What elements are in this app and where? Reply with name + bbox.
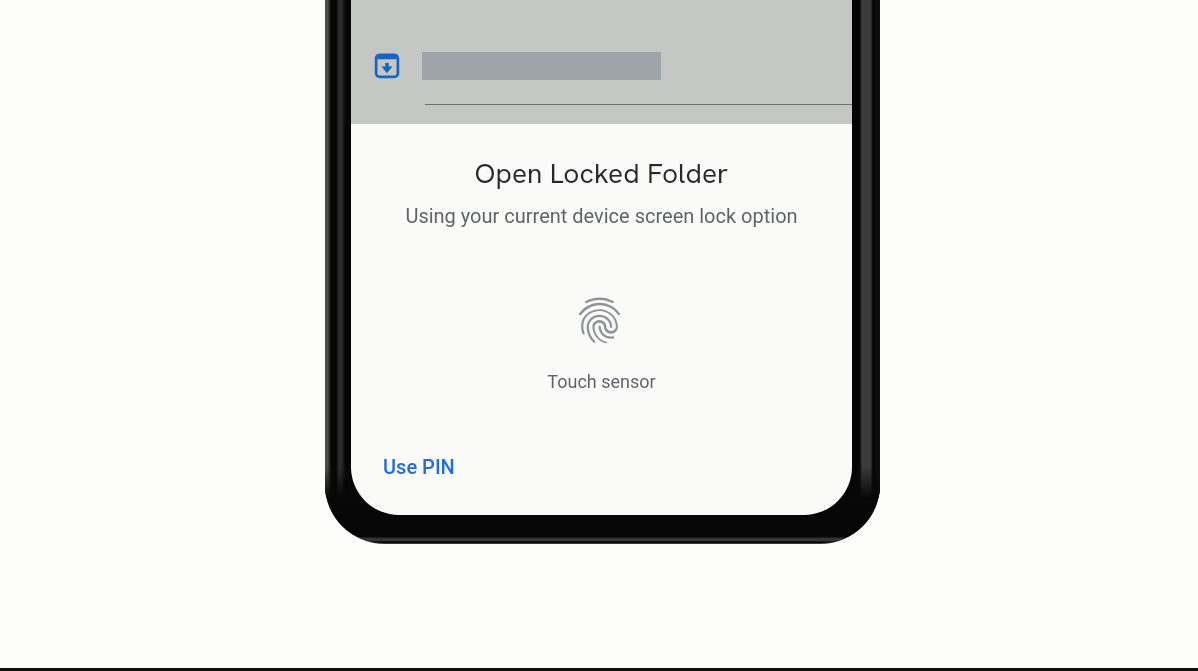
- staticText: Open Locked Folder: [351, 155, 852, 191]
- button[interactable]: Use PIN: [369, 447, 469, 486]
- staticText: Using your current device screen lock op…: [351, 204, 852, 227]
- staticText: Use PIN: [383, 455, 455, 478]
- button[interactable]: Archive: [374, 53, 400, 79]
- button[interactable]: Fingerprint sensor: [572, 293, 627, 348]
- staticText: Touch sensor: [351, 371, 852, 392]
